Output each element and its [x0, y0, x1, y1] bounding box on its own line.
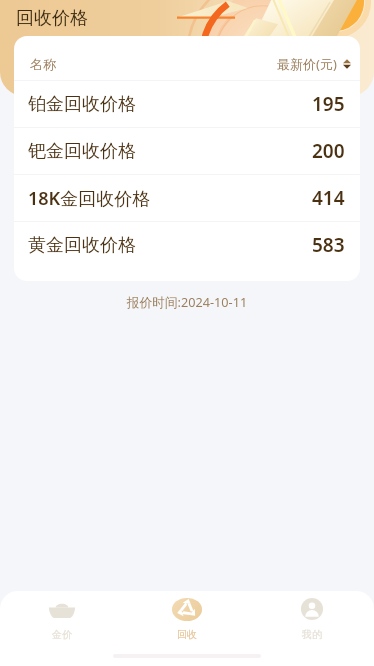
- staticText: 回收: [177, 628, 197, 641]
- button[interactable]: 黄金回收价格: [14, 221, 360, 281]
- staticText: 名称: [30, 56, 56, 72]
- staticText: 报价时间:2024-10-11: [0, 293, 374, 310]
- staticText: 钯金回收价格: [28, 140, 136, 163]
- button[interactable]: Gold price: [0, 591, 124, 641]
- button[interactable]: 铂金回收价格: [14, 80, 360, 127]
- staticText: 18K金回收价格: [28, 186, 151, 211]
- button[interactable]: 18K金回收价格: [14, 174, 360, 221]
- staticText: 黄金回收价格: [28, 234, 136, 257]
- staticText: 金价: [52, 628, 72, 641]
- staticText: 200: [312, 138, 345, 164]
- staticText: 583: [312, 232, 345, 258]
- button[interactable]: 钯金回收价格: [14, 127, 360, 174]
- staticText: 回收价格: [16, 7, 88, 30]
- staticText: 414: [312, 185, 345, 211]
- staticText: 我的: [302, 628, 322, 641]
- button[interactable]: Recycle: [124, 591, 249, 641]
- button[interactable]: 最新价(元): [277, 55, 351, 73]
- staticText: 最新价(元): [277, 55, 337, 73]
- staticText: 铂金回收价格: [28, 93, 136, 116]
- staticText: 195: [312, 91, 345, 117]
- button[interactable]: Profile: [249, 591, 374, 641]
